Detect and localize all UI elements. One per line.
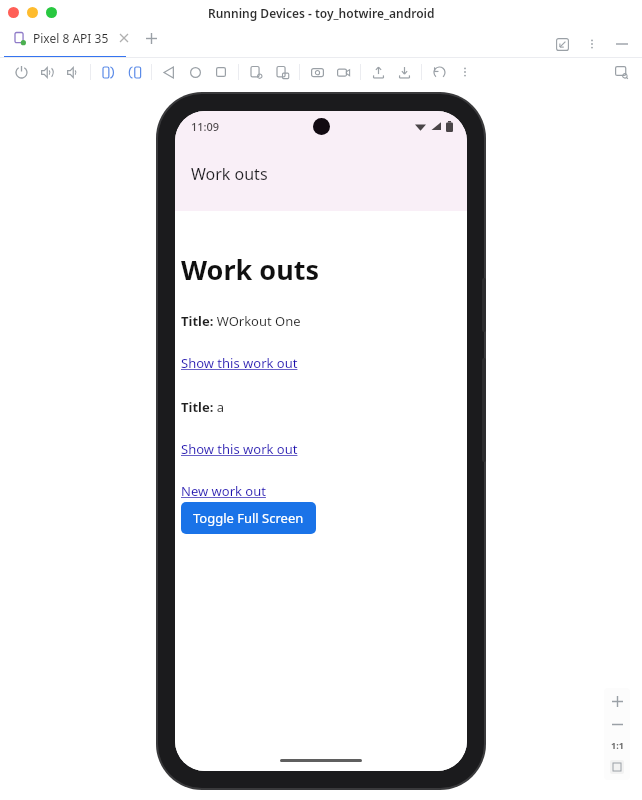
button[interactable]: Show this work out [181,440,298,458]
button[interactable]: Record screen [330,59,356,85]
staticText: Show this work out [181,440,298,458]
button[interactable]: Volume up [34,59,60,85]
button[interactable]: Minimize panel [552,34,572,54]
button[interactable]: Download [391,59,417,85]
button[interactable]: Volume down [60,59,86,85]
button[interactable]: Recents [208,59,234,85]
button[interactable]: Close tab [117,31,131,45]
button[interactable]: Back [156,59,182,85]
button[interactable]: Fold [95,59,121,85]
button[interactable]: Show this work out [181,354,298,372]
button[interactable]: More options [582,34,602,54]
staticText: Title: a [181,398,224,416]
button[interactable]: Inspect [608,59,634,85]
button[interactable]: New tab [141,28,161,48]
button[interactable]: Settings shortcut [243,59,269,85]
button[interactable]: Zoom out [607,714,627,734]
button[interactable]: Keyboard shortcut [269,59,295,85]
button[interactable]: Toggle Full Screen [181,502,316,534]
staticText: Pixel 8 API 35 [33,30,109,46]
staticText: Work outs [181,251,319,288]
button[interactable]: Screenshot [304,59,330,85]
staticText: Toggle Full Screen [193,509,304,527]
button[interactable]: More [452,59,478,85]
button[interactable]: Power [8,59,34,85]
button[interactable]: Rotate [426,59,452,85]
staticText: Title: WOrkout One [181,312,301,330]
staticText: 1:1 [611,739,624,751]
staticText: Work outs [191,163,268,185]
button[interactable]: Zoom in [604,688,630,714]
button[interactable]: Actual size [606,734,628,756]
button[interactable]: Home [182,59,208,85]
staticText: Running Devices - toy_hotwire_android [208,5,435,21]
button[interactable]: Unfold [121,59,147,85]
button[interactable]: New work out [181,482,266,500]
button[interactable]: Fit to window [606,756,628,778]
button[interactable]: Hide [612,34,632,54]
staticText: New work out [181,482,266,500]
button[interactable]: Pixel 8 API 35 [12,26,133,50]
staticText: Show this work out [181,354,298,372]
staticText: 11:09 [191,119,220,134]
button[interactable]: Upload [365,59,391,85]
